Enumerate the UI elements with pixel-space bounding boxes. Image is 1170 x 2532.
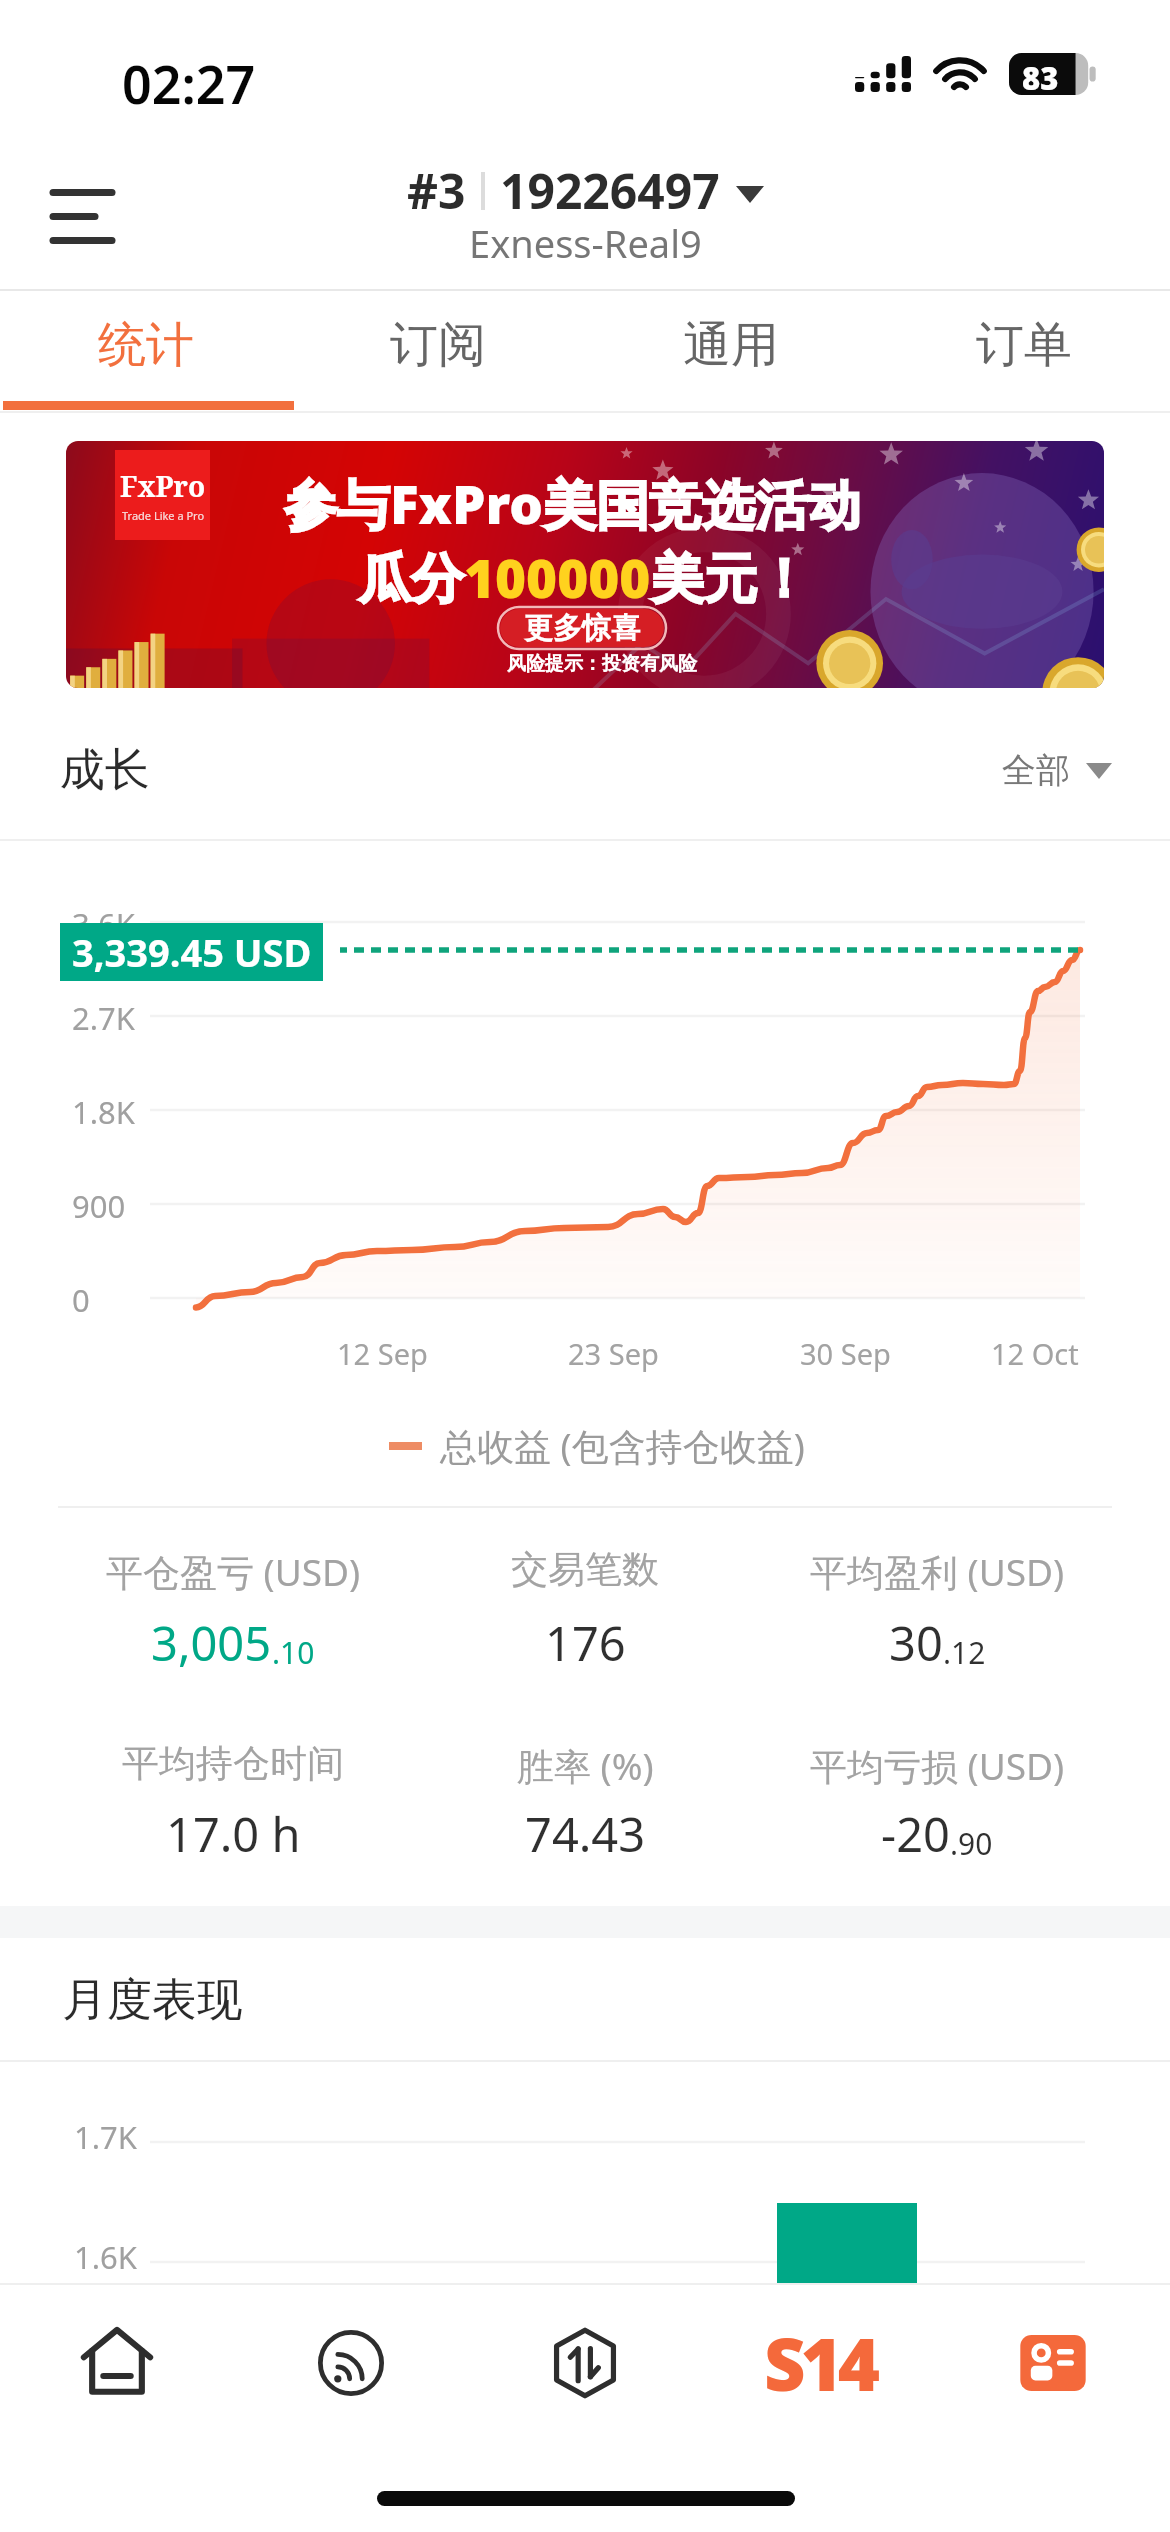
button[interactable]: Signals: [234, 2283, 468, 2443]
staticText: 通用: [683, 315, 779, 375]
staticText: 3,339.45 USD: [72, 926, 312, 978]
staticText: 统计: [98, 315, 194, 375]
staticText: 30 Sep: [800, 1334, 891, 1373]
staticText: 参与FxPro美国竞选活动: [284, 467, 862, 539]
staticText: 平均亏损 (USD): [810, 1740, 1065, 1791]
staticText: 1.8K: [72, 1091, 135, 1133]
button[interactable]: Profile: [936, 2283, 1170, 2443]
staticText: 全部: [1002, 749, 1070, 792]
staticText: 02:27: [122, 48, 256, 119]
staticText: S14: [764, 2314, 875, 2412]
staticText: 900: [72, 1185, 126, 1227]
button[interactable]: 统计: [0, 291, 292, 413]
staticText: 更多惊喜: [524, 610, 640, 647]
staticText: 3,005: [151, 1611, 272, 1675]
button[interactable]: #3: [407, 158, 764, 275]
staticText: 1.6K: [74, 2236, 137, 2278]
staticText: 成长: [60, 742, 150, 799]
staticText: 2.7K: [72, 997, 135, 1039]
staticText: 100000: [464, 541, 651, 613]
button[interactable]: 全部: [1002, 749, 1112, 792]
button[interactable]: Trade: [468, 2283, 702, 2443]
staticText: -20: [881, 1802, 950, 1866]
staticText: 平均盈利 (USD): [810, 1546, 1065, 1597]
staticText: 17.0 h: [166, 1802, 301, 1866]
staticText: 风险提示：投资有风险: [507, 652, 697, 676]
staticText: 176: [545, 1611, 626, 1675]
staticText: 瓜分: [358, 546, 464, 613]
staticText: 订单: [976, 315, 1072, 375]
staticText: 30: [889, 1611, 943, 1675]
staticText: 交易笔数: [511, 1546, 659, 1593]
staticText: 月度表现: [62, 1972, 242, 2029]
staticText: 美元！: [651, 546, 810, 613]
button[interactable]: S14: [702, 2283, 936, 2443]
staticText: 胜率 (%): [517, 1740, 654, 1791]
staticText: 12 Sep: [337, 1334, 428, 1373]
staticText: #3: [407, 158, 466, 223]
staticText: .90: [950, 1823, 993, 1864]
button[interactable]: 订阅: [292, 291, 584, 413]
button[interactable]: Home: [0, 2283, 234, 2443]
staticText: 总收益 (包含持仓收益): [440, 1420, 805, 1471]
staticText: 3.6K: [72, 903, 135, 945]
button[interactable]: 订单: [877, 291, 1170, 413]
staticText: FxPro: [120, 467, 206, 505]
staticText: 74.43: [525, 1802, 646, 1866]
button[interactable]: 通用: [584, 291, 877, 413]
staticText: Trade Like a Pro: [122, 508, 205, 523]
staticText: 83: [1022, 57, 1059, 99]
button[interactable]: Menu: [31, 167, 139, 267]
staticText: Exness-Real9: [469, 217, 702, 269]
button[interactable]: FxPro: [66, 441, 1104, 688]
staticText: .10: [272, 1632, 315, 1673]
staticText: 平仓盈亏 (USD): [106, 1546, 361, 1597]
staticText: 23 Sep: [568, 1334, 659, 1373]
staticText: .12: [943, 1632, 986, 1673]
staticText: 1.7K: [74, 2116, 137, 2158]
staticText: 平均持仓时间: [122, 1740, 344, 1787]
staticText: 19226497: [500, 158, 720, 223]
staticText: 0: [72, 1279, 90, 1321]
staticText: 订阅: [390, 315, 486, 375]
staticText: 12 Oct: [991, 1334, 1079, 1373]
